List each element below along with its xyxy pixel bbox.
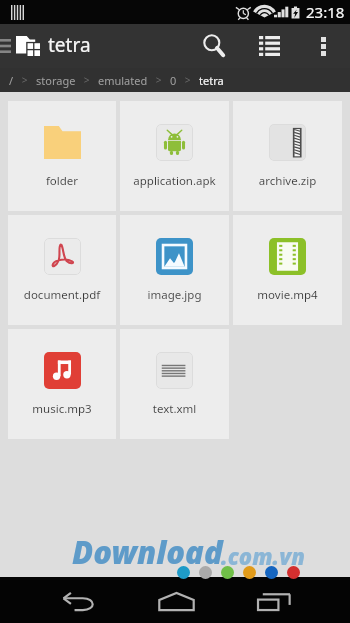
button[interactable]: text.xml <box>120 329 229 439</box>
button[interactable]: tetra <box>199 73 224 88</box>
staticText: application.apk <box>120 173 229 189</box>
button[interactable]: music.mp3 <box>8 329 116 439</box>
staticText: tetra <box>48 32 91 58</box>
staticText: > <box>76 73 98 87</box>
staticText: document.pdf <box>8 287 116 303</box>
button[interactable]: image.jpg <box>120 215 229 325</box>
button[interactable]: Search <box>192 24 236 68</box>
button[interactable]: movie.mp4 <box>233 215 342 325</box>
button[interactable]: tetra <box>0 24 101 68</box>
staticText: folder <box>8 173 116 189</box>
staticText: > <box>14 73 36 87</box>
staticText: > <box>148 73 170 87</box>
button[interactable]: 0 <box>170 73 177 88</box>
button[interactable]: folder <box>8 101 116 211</box>
staticText: text.xml <box>120 401 229 417</box>
staticText: Download <box>72 531 223 573</box>
staticText: 23:18 <box>306 2 345 22</box>
button[interactable]: More options <box>301 24 345 68</box>
staticText: movie.mp4 <box>233 287 342 303</box>
staticText: > <box>177 73 199 87</box>
button[interactable]: emulated <box>98 73 148 88</box>
button[interactable]: archive.zip <box>233 101 342 211</box>
staticText: image.jpg <box>120 287 229 303</box>
staticText: archive.zip <box>233 173 342 189</box>
button[interactable]: document.pdf <box>8 215 116 325</box>
button[interactable]: List view <box>247 24 291 68</box>
button[interactable]: application.apk <box>120 101 229 211</box>
button[interactable]: / <box>9 73 14 88</box>
button[interactable]: storage <box>36 73 76 88</box>
button[interactable]: Home <box>148 577 204 623</box>
staticText: music.mp3 <box>8 401 116 417</box>
button[interactable]: Back <box>50 577 106 623</box>
button[interactable]: Recents <box>246 577 302 623</box>
staticText: .com.vn <box>221 541 305 571</box>
